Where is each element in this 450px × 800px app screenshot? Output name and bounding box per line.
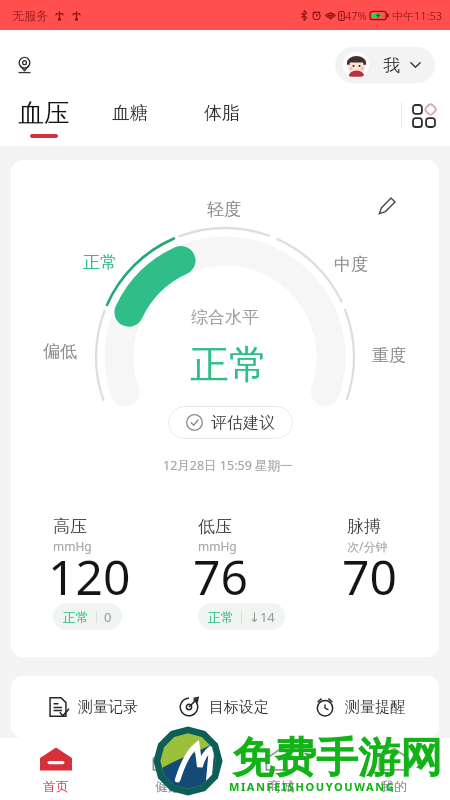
staticText: 正常 (63, 609, 89, 625)
button[interactable]: 首页 (0, 738, 112, 800)
button[interactable]: 正常 (53, 603, 122, 630)
staticText: 免费手游网 (232, 732, 442, 785)
staticText: 正常 (208, 609, 234, 625)
button[interactable]: 血糖 (112, 102, 148, 125)
staticText: 脉搏 (347, 516, 381, 537)
staticText: 血压 (18, 97, 70, 130)
button[interactable]: Apps (411, 102, 437, 128)
staticText: MIANFEISHOUYOUWANG (229, 779, 396, 794)
staticText: 健康 (155, 778, 181, 794)
staticText: 测量提醒 (345, 698, 405, 717)
staticText: 我的 (381, 778, 407, 794)
button[interactable]: 体脂 (204, 102, 240, 125)
staticText: 偏低 (43, 341, 77, 362)
button[interactable]: 我的 (337, 738, 450, 800)
staticText: 测量记录 (78, 698, 138, 717)
staticText: 低压 (198, 516, 232, 537)
button[interactable]: 目标设定 (178, 676, 269, 738)
staticText: 0 (104, 608, 112, 626)
staticText: 12月28日 15:59 星期一 (163, 457, 293, 474)
staticText: 体脂 (204, 102, 240, 125)
staticText: ↓14 (249, 608, 275, 626)
staticText: mmHg (53, 538, 92, 554)
button[interactable]: 测量记录 (47, 676, 138, 738)
staticText: 我 (383, 55, 400, 76)
staticText: 中度 (334, 254, 368, 275)
staticText: 重度 (372, 345, 406, 366)
staticText: 轻度 (207, 199, 241, 220)
button[interactable]: 正常 (198, 603, 285, 630)
staticText: 综合水平 (191, 307, 259, 328)
staticText: 76 (193, 544, 248, 609)
staticText: 47% (345, 8, 367, 23)
button[interactable]: Location (9, 50, 39, 80)
button[interactable]: 测量提醒 (314, 676, 405, 738)
staticText: 商城 (268, 778, 294, 794)
staticText: 高压 (53, 516, 87, 537)
staticText: 正常 (83, 252, 117, 273)
staticText: 正常 (190, 340, 268, 389)
staticText: 无服务 (12, 8, 48, 23)
button[interactable]: 商城 (224, 738, 337, 800)
button[interactable]: Edit (373, 192, 401, 220)
staticText: 70 (342, 544, 397, 609)
staticText: 次/分钟 (347, 538, 388, 554)
staticText: 中午11:53 (392, 8, 443, 23)
staticText: 评估建议 (211, 413, 275, 433)
button[interactable]: 评估建议 (168, 406, 293, 439)
button[interactable]: 我 (335, 47, 435, 83)
staticText: 首页 (43, 778, 69, 794)
button[interactable]: 血压 (18, 97, 70, 138)
staticText: 120 (48, 544, 131, 609)
button[interactable]: 健康 (112, 738, 224, 800)
staticText: 目标设定 (209, 698, 269, 717)
staticText: mmHg (198, 538, 237, 554)
staticText: 血糖 (112, 102, 148, 125)
